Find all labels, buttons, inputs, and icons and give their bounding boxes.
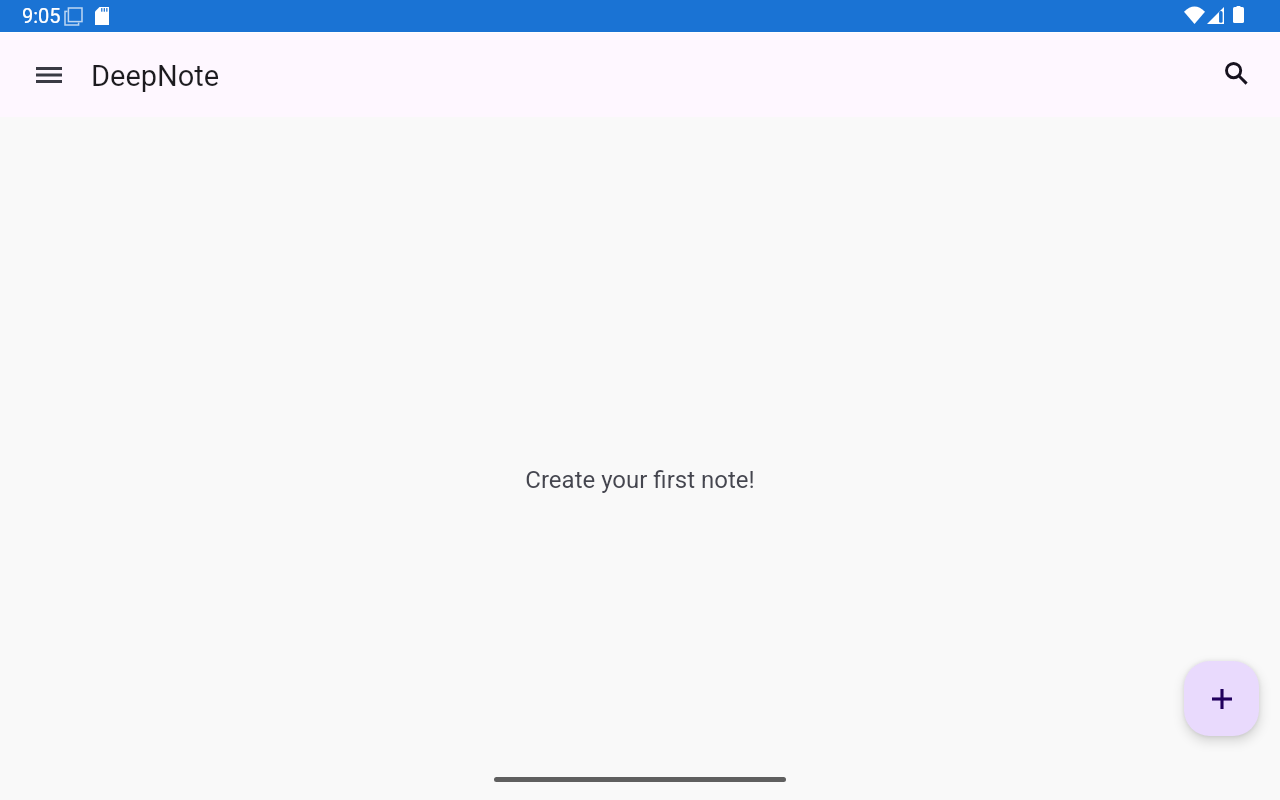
button[interactable]: Search	[1212, 51, 1260, 99]
staticText: Create your first note!	[525, 466, 755, 494]
staticText: 9:05	[22, 4, 61, 27]
button[interactable]: Menu	[24, 51, 72, 99]
staticText: DeepNote	[91, 59, 220, 93]
button[interactable]: Create note	[1184, 661, 1259, 736]
